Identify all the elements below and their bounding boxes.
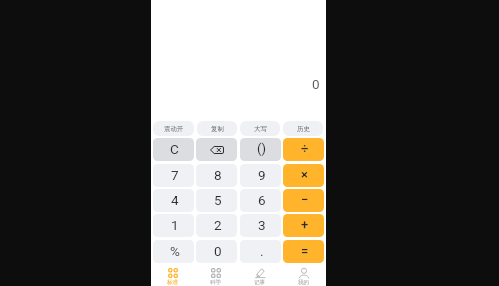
staticText: 1 <box>171 217 179 233</box>
staticText: 3 <box>258 217 266 233</box>
button[interactable]: 标准 <box>151 266 194 286</box>
staticText: 标准 <box>167 279 179 286</box>
staticText: 6 <box>258 192 266 208</box>
staticText: C <box>170 141 179 157</box>
staticText: 记事 <box>254 279 266 286</box>
staticText: = <box>301 243 309 258</box>
button[interactable]: 0 <box>196 240 237 263</box>
staticText: 0 <box>312 76 320 92</box>
staticText: 震动开 <box>164 125 184 133</box>
button[interactable]: = <box>283 240 324 263</box>
button[interactable]: 3 <box>240 214 281 237</box>
button[interactable]: Backspace <box>196 138 237 161</box>
button[interactable]: 1 <box>153 214 194 237</box>
staticText: 4 <box>171 192 179 208</box>
button[interactable]: 2 <box>196 214 237 237</box>
button[interactable]: 记事 <box>238 266 282 286</box>
staticText: + <box>301 217 309 232</box>
staticText: − <box>301 192 309 207</box>
button[interactable]: % <box>153 240 194 263</box>
button[interactable]: − <box>283 189 324 212</box>
button[interactable]: 震动开 <box>153 121 194 136</box>
button[interactable]: 6 <box>240 189 281 212</box>
staticText: 历史 <box>297 125 310 133</box>
button[interactable]: 9 <box>240 164 281 187</box>
staticText: ÷ <box>301 141 309 156</box>
button[interactable]: () <box>240 138 281 161</box>
button[interactable]: + <box>283 214 324 237</box>
button[interactable]: × <box>283 164 324 187</box>
button[interactable]: 4 <box>153 189 194 212</box>
button[interactable]: 复制 <box>197 121 237 136</box>
staticText: 0 <box>214 243 222 259</box>
button[interactable]: 大写 <box>240 121 280 136</box>
staticText: . <box>260 243 264 259</box>
staticText: 我的 <box>298 279 310 286</box>
staticText: 复制 <box>211 125 224 133</box>
button[interactable]: 7 <box>153 164 194 187</box>
staticText: 大写 <box>254 125 267 133</box>
button[interactable]: C <box>153 138 194 161</box>
button[interactable]: 科学 <box>194 266 238 286</box>
staticText: () <box>257 141 266 156</box>
button[interactable]: 8 <box>196 164 237 187</box>
staticText: 8 <box>214 167 222 183</box>
staticText: % <box>170 243 180 259</box>
staticText: × <box>301 167 308 182</box>
button[interactable]: 我的 <box>282 266 326 286</box>
staticText: 5 <box>214 192 222 208</box>
button[interactable]: 5 <box>196 189 237 212</box>
button[interactable]: . <box>240 240 281 263</box>
staticText: 科学 <box>210 279 222 286</box>
staticText: 2 <box>214 217 222 233</box>
button[interactable]: 历史 <box>283 121 323 136</box>
button[interactable]: ÷ <box>283 138 324 161</box>
staticText: 9 <box>258 167 266 183</box>
staticText: 7 <box>171 167 179 183</box>
